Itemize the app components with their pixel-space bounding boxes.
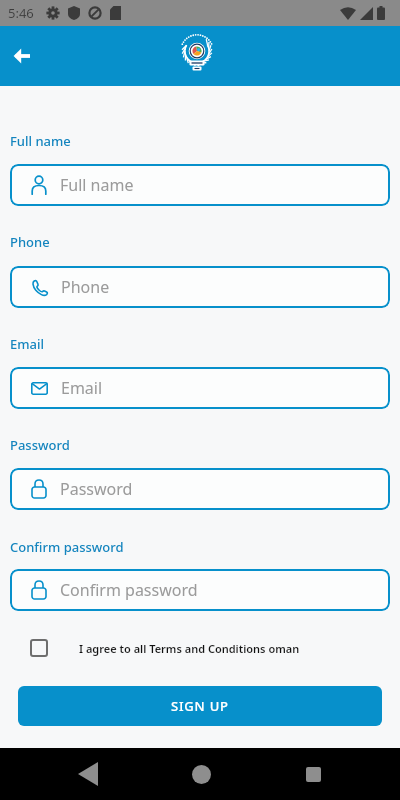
button[interactable]: Email <box>10 367 390 409</box>
staticText: Email <box>61 377 103 399</box>
staticText: Full name <box>60 174 134 196</box>
staticText: 5:46 <box>8 4 34 22</box>
button[interactable] <box>68 754 108 794</box>
button[interactable]: SIGN UP <box>18 686 382 726</box>
button[interactable]: Full name <box>10 164 390 206</box>
button[interactable]: Phone <box>10 266 390 308</box>
staticText: I agree to all Terms and Conditions oman <box>79 641 300 656</box>
button[interactable] <box>293 754 333 794</box>
button[interactable] <box>181 754 221 794</box>
staticText: Phone <box>10 233 50 251</box>
staticText: Password <box>10 436 70 454</box>
staticText: Confirm password <box>10 538 124 556</box>
staticText: Email <box>10 335 45 353</box>
button[interactable]: Password <box>10 468 390 510</box>
button[interactable]: I agree to all Terms and Conditions oman <box>30 639 390 657</box>
button[interactable] <box>6 40 38 72</box>
staticText: SIGN UP <box>171 697 229 715</box>
staticText: Confirm password <box>60 579 198 601</box>
button[interactable]: Confirm password <box>10 569 390 611</box>
staticText: Password <box>60 478 133 500</box>
staticText: Phone <box>61 276 110 298</box>
staticText: Full name <box>10 132 71 150</box>
